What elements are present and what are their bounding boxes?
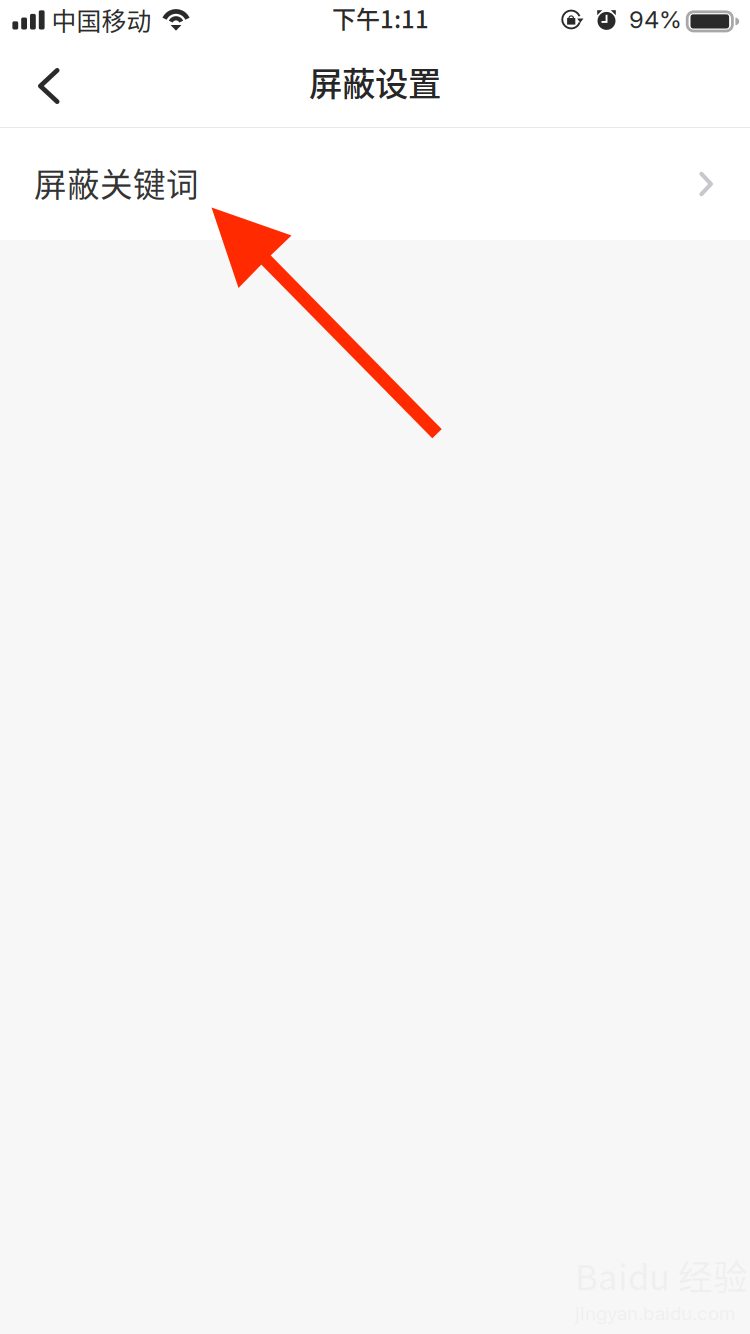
staticText: 94% [629, 5, 682, 34]
button[interactable]: 屏蔽关键词 [0, 128, 750, 240]
staticText: 屏蔽关键词 [34, 159, 199, 206]
staticText: 屏蔽设置 [309, 57, 441, 106]
staticText: 中国移动 [51, 2, 151, 38]
button[interactable]: 返回 [0, 46, 90, 126]
staticText: 下午1:11 [332, 0, 429, 35]
